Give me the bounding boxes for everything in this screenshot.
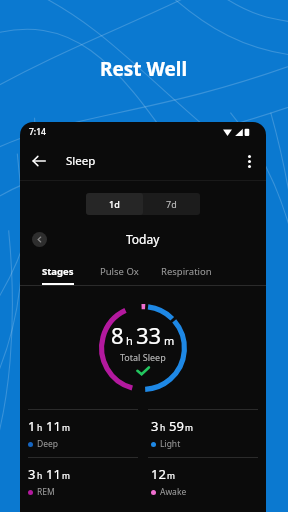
button[interactable]: 1: [20, 410, 143, 457]
staticText: h: [37, 470, 43, 482]
staticText: 11: [46, 417, 61, 435]
staticText: Light: [160, 438, 181, 450]
staticText: 8: [111, 320, 124, 350]
staticText: 11: [46, 465, 61, 483]
staticText: h: [126, 333, 133, 348]
staticText: 12: [151, 465, 166, 483]
staticText: 3: [151, 417, 159, 435]
staticText: m: [164, 333, 175, 348]
button[interactable]: Stages: [42, 265, 74, 285]
button[interactable]: 3: [20, 458, 143, 505]
staticText: m: [62, 470, 70, 482]
button[interactable]: 1d: [86, 193, 143, 215]
staticText: 3: [28, 465, 36, 483]
button[interactable]: More options: [232, 144, 266, 178]
staticText: REM: [37, 486, 55, 498]
staticText: 59: [169, 417, 184, 435]
staticText: 1d: [109, 198, 120, 210]
staticText: Sleep: [66, 153, 96, 169]
staticText: Total Sleep: [120, 351, 166, 363]
button[interactable]: Previous day: [32, 232, 47, 247]
staticText: h: [160, 422, 166, 434]
staticText: Rest Well: [100, 56, 188, 82]
staticText: m: [167, 470, 175, 482]
staticText: 7d: [166, 198, 177, 210]
staticText: Stages: [42, 265, 74, 278]
button[interactable]: Respiration: [161, 265, 212, 285]
button[interactable]: Back: [20, 142, 58, 180]
staticText: h: [37, 422, 43, 434]
staticText: Deep: [37, 438, 59, 450]
button[interactable]: 12: [143, 458, 266, 505]
staticText: m: [62, 422, 70, 434]
staticText: 7:14: [29, 126, 46, 138]
button[interactable]: Pulse Ox: [100, 265, 139, 285]
staticText: Today: [126, 231, 160, 247]
staticText: 33: [136, 320, 162, 350]
staticText: Awake: [160, 486, 187, 498]
staticText: m: [185, 422, 193, 434]
button[interactable]: 3: [143, 410, 266, 457]
staticText: Pulse Ox: [100, 265, 139, 278]
button[interactable]: 7d: [143, 193, 200, 215]
staticText: 1: [28, 417, 36, 435]
staticText: Respiration: [161, 265, 212, 278]
